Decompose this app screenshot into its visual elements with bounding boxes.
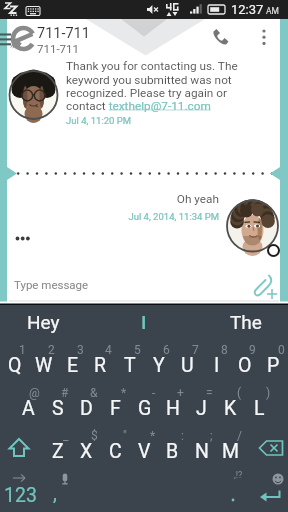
button[interactable]: # [43, 383, 72, 426]
button[interactable]: @ [14, 383, 43, 426]
staticText: AM [266, 6, 279, 16]
staticText: M [222, 440, 240, 463]
staticText: ( [237, 386, 242, 400]
button[interactable]: 123 [0, 469, 40, 512]
button[interactable] [8, 268, 248, 300]
staticText: D [80, 397, 93, 420]
button[interactable]: More options [252, 22, 280, 50]
button[interactable]: - [130, 383, 159, 426]
button[interactable]: 9 [230, 340, 259, 383]
staticText: X [80, 440, 93, 463]
staticText: ,!? [234, 470, 243, 481]
button[interactable]: ( [216, 383, 245, 426]
staticText: $ [91, 429, 98, 443]
staticText: Y [153, 354, 165, 377]
staticText: O [238, 354, 252, 377]
staticText: A [22, 397, 35, 420]
button[interactable]: / [216, 426, 245, 469]
staticText: I [141, 311, 147, 333]
button[interactable]: & [72, 383, 101, 426]
staticText: G [138, 397, 152, 420]
staticText: P [267, 354, 280, 377]
button[interactable]: I [96, 305, 192, 340]
staticText: S [52, 397, 64, 420]
button[interactable]: 4 [86, 340, 115, 383]
staticText: Thank you for contacting us. The keyword… [66, 59, 242, 112]
staticText: ) [266, 386, 271, 400]
staticText: V [138, 440, 151, 463]
staticText: R [94, 354, 107, 377]
staticText: 9 [249, 343, 256, 357]
staticText: Z [52, 440, 64, 463]
button[interactable]: Navigation drawer [0, 26, 14, 52]
button[interactable]: " [101, 426, 130, 469]
staticText: * [150, 429, 156, 443]
button[interactable]: 1 [0, 340, 29, 383]
staticText: Q [8, 354, 22, 377]
staticText: _ [63, 429, 69, 443]
staticText: L [254, 397, 265, 420]
button[interactable]: 2 [29, 340, 58, 383]
button[interactable]: Hey [0, 305, 96, 340]
staticText: : [181, 429, 184, 443]
staticText: 6 [163, 343, 170, 357]
button[interactable]: Call [202, 22, 234, 54]
button[interactable]: 0 [259, 340, 288, 383]
staticText: , [53, 482, 57, 505]
staticText: H [166, 397, 180, 420]
staticText: Jul 4, 11:20 PM [66, 115, 132, 126]
staticText: " [123, 429, 127, 443]
button[interactable]: 8 [202, 340, 231, 383]
staticText: 711-711 [37, 42, 79, 55]
staticText: W [35, 354, 53, 377]
staticText: B [166, 440, 179, 463]
staticText: 711-711 [37, 25, 90, 42]
staticText: F [110, 397, 121, 420]
staticText: 7 [192, 343, 199, 357]
button[interactable]: Period [218, 469, 248, 512]
staticText: Type message [14, 278, 89, 291]
button[interactable]: = [187, 383, 216, 426]
button[interactable]: Shift [0, 426, 40, 469]
staticText: * [121, 386, 127, 400]
staticText: T [124, 354, 136, 377]
staticText: = [206, 386, 213, 400]
staticText: / [237, 429, 242, 443]
staticText: J [196, 397, 207, 420]
button[interactable]: 3 [58, 340, 87, 383]
staticText: - [152, 386, 156, 400]
staticText: 123 [4, 484, 37, 507]
staticText: 2 [48, 343, 55, 357]
button[interactable]: : [158, 426, 187, 469]
staticText: 0 [278, 343, 285, 357]
staticText: 8 [221, 343, 228, 357]
staticText: K [224, 397, 237, 420]
staticText: & [90, 386, 98, 400]
staticText: I [214, 354, 220, 377]
button[interactable]: Backspace [248, 426, 288, 469]
button[interactable]: The [192, 305, 288, 340]
button[interactable]: Enter [248, 469, 288, 512]
staticText: 12:37 [231, 2, 264, 17]
staticText: 3 [77, 343, 84, 357]
button[interactable]: , [40, 469, 70, 512]
button[interactable]: 7 [173, 340, 202, 383]
staticText: Oh yeah [176, 192, 219, 206]
button[interactable]: ) [245, 383, 274, 426]
button[interactable]: 5 [115, 340, 144, 383]
button[interactable]: ; [187, 426, 216, 469]
staticText: + [177, 386, 184, 400]
staticText: The [230, 311, 262, 333]
staticText: Jul 4, 2014, 11:34 PM [128, 211, 219, 222]
button[interactable]: * [101, 383, 130, 426]
button[interactable]: $ [72, 426, 101, 469]
button[interactable]: * [130, 426, 159, 469]
staticText: 5 [134, 343, 141, 357]
button[interactable]: + [158, 383, 187, 426]
button[interactable]: _ [43, 426, 72, 469]
button[interactable]: 6 [144, 340, 173, 383]
button[interactable]: Attach [250, 268, 282, 300]
staticText: 1 [19, 343, 26, 357]
staticText: Hey [27, 311, 60, 333]
